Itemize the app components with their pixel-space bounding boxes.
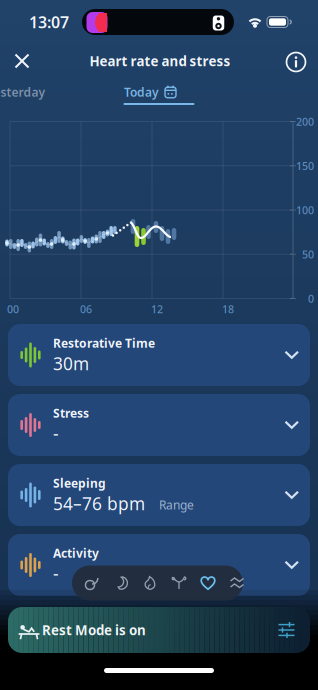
staticText: 06	[80, 302, 92, 316]
staticText: Activity	[53, 545, 99, 561]
button[interactable]: Close	[4, 43, 40, 79]
staticText: -	[53, 422, 59, 445]
staticText: -	[53, 562, 59, 585]
button[interactable]: Activity	[8, 534, 310, 596]
staticText: 150	[296, 159, 314, 173]
staticText: 13:07	[29, 11, 69, 33]
button[interactable]: Body	[77, 565, 106, 600]
button[interactable]: Sleeping	[8, 464, 310, 526]
button[interactable]: Altitude	[222, 565, 251, 600]
staticText: 18	[222, 302, 234, 316]
staticText: Restorative Time	[53, 335, 155, 351]
staticText: 200	[296, 114, 314, 129]
staticText: 12	[151, 302, 163, 316]
staticText: Sleeping	[53, 475, 106, 491]
staticText: 0	[308, 291, 314, 306]
staticText: Stress	[53, 405, 89, 421]
staticText: Rest Mode is on	[42, 621, 146, 639]
button[interactable]: Restorative Time	[8, 324, 310, 386]
staticText: Today	[124, 84, 159, 100]
staticText: Yesterday	[0, 84, 45, 100]
button[interactable]: Today	[124, 84, 177, 100]
staticText: 54–76 bpm	[53, 492, 145, 515]
button[interactable]: Calories	[135, 565, 164, 600]
staticText: 50	[302, 247, 314, 261]
button[interactable]: Info	[281, 47, 311, 77]
staticText: 100	[296, 203, 314, 217]
staticText: 30m	[53, 352, 89, 375]
button[interactable]: Yesterday	[0, 84, 45, 100]
button[interactable]: Balance	[164, 565, 193, 600]
button[interactable]: Sleep	[106, 565, 135, 600]
button[interactable]: Stress	[8, 394, 310, 456]
staticText: Heart rate and stress	[89, 52, 230, 70]
button[interactable]: Heart rate	[193, 565, 222, 600]
button[interactable]: Rest Mode is on	[8, 607, 310, 653]
staticText: Range	[159, 497, 194, 513]
staticText: 00	[7, 302, 19, 316]
